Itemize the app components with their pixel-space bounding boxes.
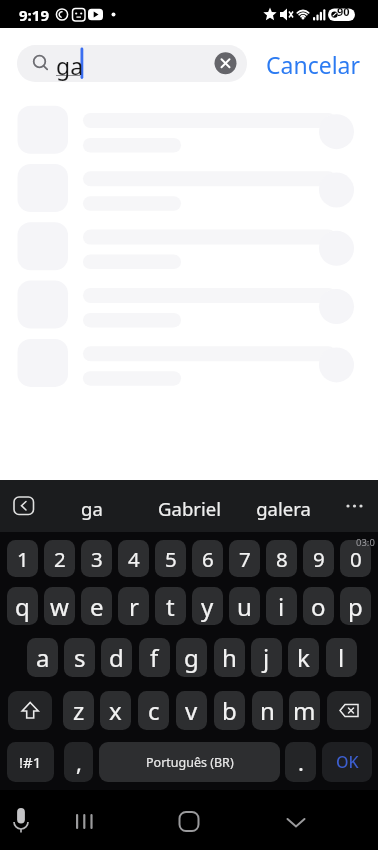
staticText: galera: [256, 496, 311, 521]
staticText: c: [148, 694, 160, 727]
button[interactable]: p: [340, 587, 371, 625]
button[interactable]: 3: [81, 540, 112, 577]
staticText: f: [150, 641, 159, 674]
staticText: r: [129, 590, 139, 623]
button[interactable]: [8, 490, 40, 522]
button[interactable]: m: [289, 691, 320, 730]
staticText: v: [185, 694, 198, 727]
staticText: u: [237, 590, 252, 623]
button[interactable]: Cancelar: [258, 48, 368, 80]
staticText: 8: [276, 545, 288, 573]
button[interactable]: b: [214, 691, 245, 730]
button[interactable]: d: [101, 638, 132, 677]
button[interactable]: u: [229, 587, 260, 625]
button[interactable]: n: [252, 691, 283, 730]
button[interactable]: [213, 51, 238, 76]
button[interactable]: c: [138, 691, 169, 730]
button[interactable]: e: [81, 587, 112, 625]
button[interactable]: [8, 691, 52, 730]
button[interactable]: [66, 805, 102, 845]
button[interactable]: 2: [44, 540, 75, 577]
staticText: w: [50, 590, 69, 623]
button[interactable]: [338, 490, 370, 522]
button[interactable]: ga: [17, 45, 247, 82]
button[interactable]: w: [44, 587, 75, 625]
staticText: q: [15, 590, 30, 623]
staticText: ga: [81, 496, 103, 521]
staticText: x: [109, 694, 122, 727]
staticText: o: [311, 590, 326, 623]
button[interactable]: g: [176, 638, 207, 677]
button[interactable]: y: [192, 587, 223, 625]
button[interactable]: t: [155, 587, 186, 625]
staticText: z: [73, 694, 85, 727]
staticText: l: [338, 641, 345, 674]
staticText: !#1: [19, 752, 42, 772]
staticText: e: [90, 590, 104, 623]
button[interactable]: f: [139, 638, 170, 677]
button[interactable]: x: [100, 691, 131, 730]
button[interactable]: 6: [192, 540, 223, 577]
staticText: 6: [202, 545, 214, 573]
staticText: y: [201, 590, 214, 623]
button[interactable]: i: [266, 587, 297, 625]
button[interactable]: o: [303, 587, 334, 625]
button[interactable]: 0: [340, 540, 371, 577]
button[interactable]: 5: [155, 540, 186, 577]
button[interactable]: q: [7, 587, 38, 625]
button[interactable]: h: [214, 638, 245, 677]
button[interactable]: .: [285, 742, 316, 782]
staticText: 1: [17, 545, 29, 573]
staticText: Português (BR): [146, 754, 234, 771]
staticText: p: [348, 590, 363, 623]
button[interactable]: Português (BR): [99, 742, 280, 782]
button[interactable]: v: [176, 691, 207, 730]
staticText: g: [184, 641, 199, 674]
staticText: b: [222, 694, 237, 727]
staticText: 9:19: [19, 5, 49, 25]
staticText: s: [74, 641, 86, 674]
button[interactable]: 7: [229, 540, 260, 577]
staticText: 03:0: [356, 536, 375, 549]
button[interactable]: ,: [64, 742, 93, 782]
button[interactable]: j: [251, 638, 282, 677]
button[interactable]: 8: [266, 540, 297, 577]
staticText: 5: [165, 545, 177, 573]
button[interactable]: 4: [118, 540, 149, 577]
staticText: 9: [313, 545, 325, 573]
button[interactable]: galera: [238, 496, 328, 521]
staticText: Cancelar: [266, 49, 361, 80]
staticText: .: [298, 747, 304, 777]
button[interactable]: 9: [303, 540, 334, 577]
staticText: 90: [337, 4, 350, 19]
button[interactable]: l: [326, 638, 357, 677]
button[interactable]: r: [118, 587, 149, 625]
staticText: 3: [91, 545, 103, 573]
button[interactable]: [6, 804, 38, 844]
button[interactable]: OK: [322, 742, 372, 782]
button[interactable]: [327, 691, 371, 730]
button[interactable]: k: [288, 638, 319, 677]
staticText: n: [260, 694, 275, 727]
staticText: h: [222, 641, 237, 674]
staticText: t: [166, 590, 175, 623]
staticText: ga: [56, 50, 84, 81]
staticText: m: [293, 694, 316, 727]
staticText: OK: [336, 751, 359, 773]
button[interactable]: z: [63, 691, 94, 730]
staticText: j: [263, 641, 270, 674]
staticText: 7: [239, 545, 251, 573]
button[interactable]: [171, 805, 207, 845]
button[interactable]: 1: [7, 540, 38, 577]
staticText: ,: [76, 747, 82, 777]
button[interactable]: s: [64, 638, 95, 677]
staticText: 0: [350, 545, 362, 573]
button[interactable]: ga: [57, 496, 127, 521]
staticText: 4: [128, 545, 140, 573]
button[interactable]: [278, 805, 314, 845]
button[interactable]: !#1: [7, 742, 54, 782]
staticText: i: [278, 590, 285, 623]
button[interactable]: Gabriel: [144, 496, 234, 521]
staticText: k: [297, 641, 310, 674]
button[interactable]: a: [27, 638, 58, 677]
